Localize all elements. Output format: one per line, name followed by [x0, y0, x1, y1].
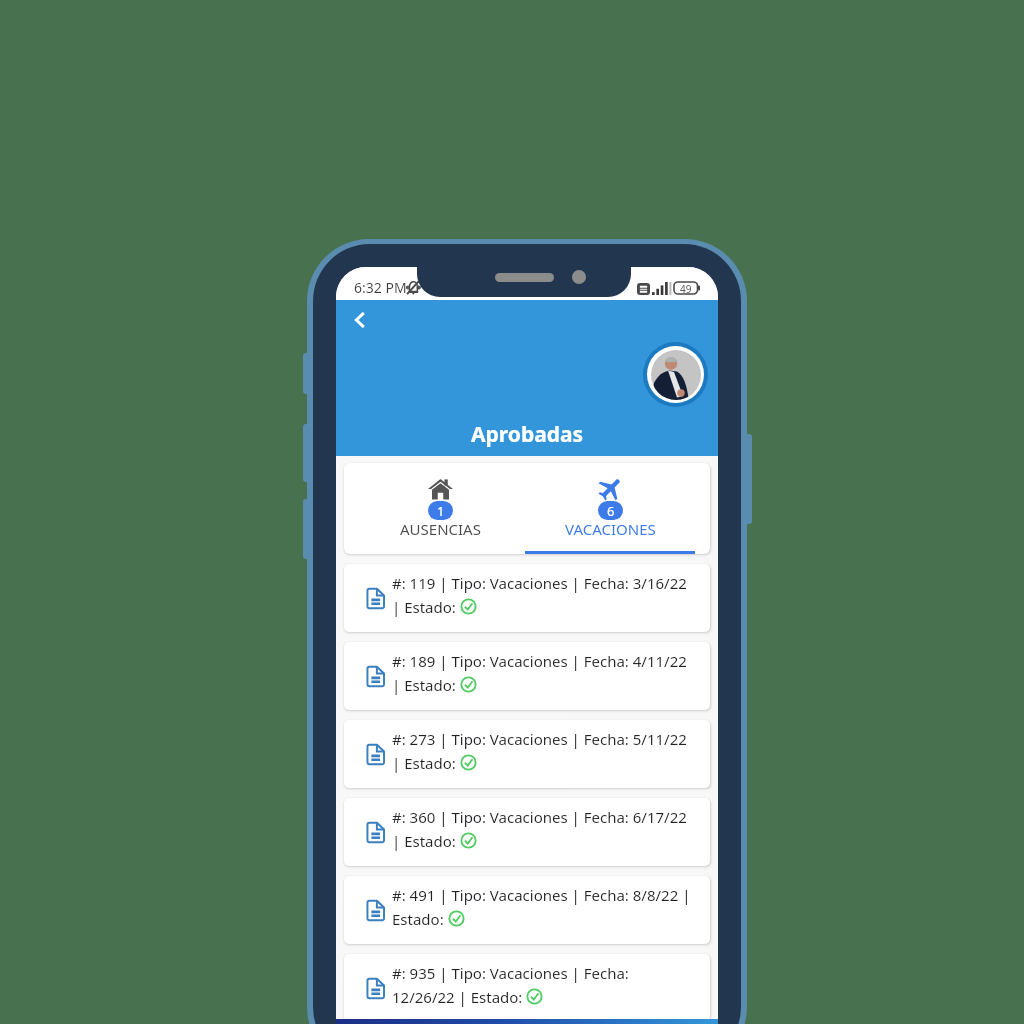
staticText: Aprobadas: [471, 420, 584, 449]
button[interactable]: 1: [355, 463, 525, 554]
staticText: 6: [607, 502, 615, 520]
button[interactable]: #: 360 | Tipo: Vacaciones | Fecha: 6/17/…: [344, 798, 710, 866]
staticText: 6:32 PM: [354, 278, 407, 297]
staticText: 1: [437, 502, 445, 520]
staticText: 49: [680, 282, 692, 294]
staticText: #: 935 | Tipo: Vacaciones | Fecha: 12/26…: [392, 963, 692, 1007]
button[interactable]: #: 935 | Tipo: Vacaciones | Fecha: 12/26…: [344, 954, 710, 1022]
staticText: VACACIONES: [565, 519, 656, 539]
staticText: AUSENCIAS: [400, 519, 481, 539]
button[interactable]: #: 189 | Tipo: Vacaciones | Fecha: 4/11/…: [344, 642, 710, 710]
button[interactable]: Profile: [643, 342, 708, 407]
staticText: #: 360 | Tipo: Vacaciones | Fecha: 6/17/…: [392, 807, 692, 851]
button[interactable]: #: 119 | Tipo: Vacaciones | Fecha: 3/16/…: [344, 564, 710, 632]
staticText: #: 491 | Tipo: Vacaciones | Fecha: 8/8/2…: [392, 885, 692, 929]
button[interactable]: #: 273 | Tipo: Vacaciones | Fecha: 5/11/…: [344, 720, 710, 788]
staticText: #: 119 | Tipo: Vacaciones | Fecha: 3/16/…: [392, 573, 692, 617]
button[interactable]: 6: [525, 463, 695, 554]
button[interactable]: Back: [340, 300, 380, 340]
staticText: #: 189 | Tipo: Vacaciones | Fecha: 4/11/…: [392, 651, 692, 695]
staticText: #: 273 | Tipo: Vacaciones | Fecha: 5/11/…: [392, 729, 692, 773]
button[interactable]: #: 491 | Tipo: Vacaciones | Fecha: 8/8/2…: [344, 876, 710, 944]
